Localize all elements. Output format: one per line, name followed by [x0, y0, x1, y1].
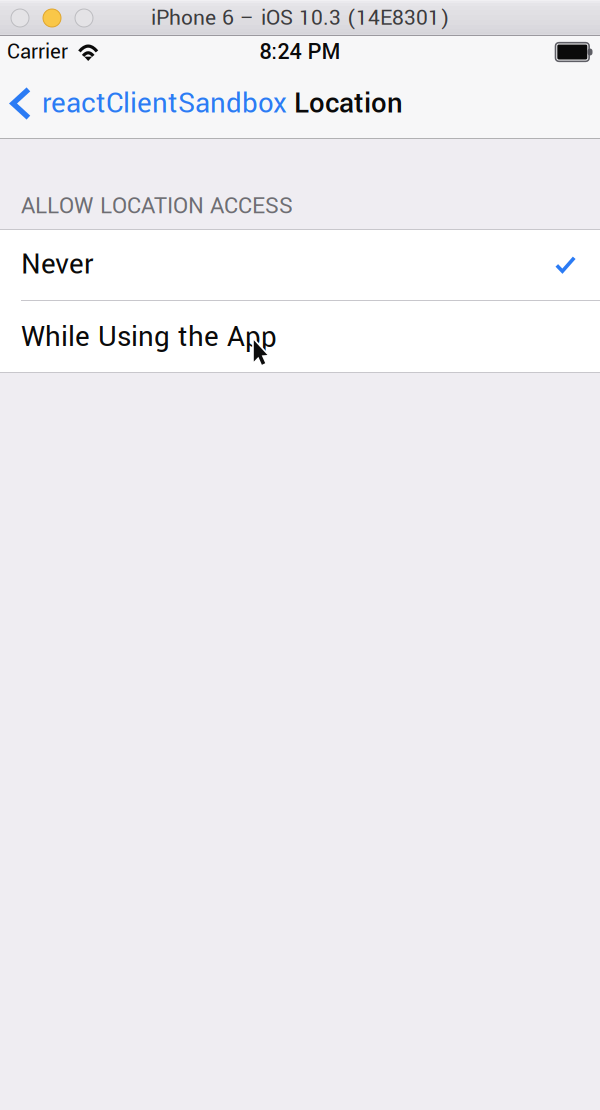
staticText: reactClientSandbox [42, 84, 287, 123]
staticText: ALLOW LOCATION ACCESS [21, 190, 293, 222]
button[interactable]: reactClientSandbox [0, 68, 293, 138]
button[interactable]: Minimize [36, 1, 68, 35]
button[interactable]: While Using the App [0, 301, 600, 373]
staticText: 8:24 PM [259, 36, 340, 67]
staticText: Never [21, 245, 93, 284]
staticText: iPhone 6 – iOS 10.3 (14E8301) [151, 3, 449, 33]
staticText: Location [294, 84, 403, 123]
button[interactable]: Never [0, 229, 600, 300]
staticText: While Using the App [21, 317, 277, 357]
staticText: Carrier [7, 37, 68, 67]
button[interactable]: Close [4, 1, 36, 35]
button[interactable]: Zoom [68, 1, 100, 35]
